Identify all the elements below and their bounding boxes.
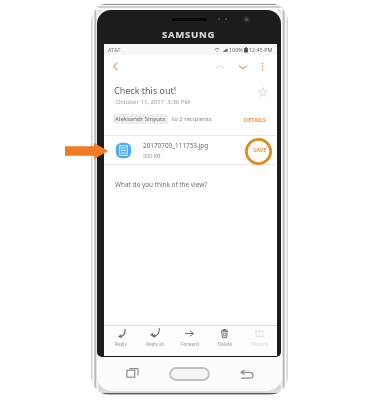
button[interactable]: Reply all [138, 326, 172, 349]
button[interactable]: Back [108, 59, 123, 74]
button[interactable]: Next message [235, 59, 250, 74]
button[interactable]: Star [256, 85, 269, 98]
button[interactable]: Reply [104, 326, 138, 349]
button[interactable]: 20170709_111753.jpg [104, 136, 277, 164]
staticText: Reply all [146, 341, 164, 347]
staticText: October 11, 2017 3:36 PM [116, 98, 190, 106]
button[interactable]: Discard [242, 326, 277, 349]
staticText: SAVE [253, 146, 267, 154]
staticText: to 2 recipients [172, 115, 212, 123]
staticText: Check this out! [114, 84, 177, 96]
button[interactable]: Back [239, 367, 255, 383]
staticText: 12:45 PM [249, 46, 273, 53]
staticText: AT&T [108, 46, 121, 53]
staticText: Delete [218, 341, 232, 347]
staticText: What do you think of the view? [115, 180, 208, 189]
button[interactable]: Recent apps [126, 366, 140, 380]
staticText: 100% [229, 46, 243, 53]
button[interactable]: More options [255, 59, 270, 74]
button[interactable]: Delete [207, 326, 242, 349]
button[interactable]: Previous message [212, 59, 227, 74]
staticText: Reply [115, 341, 127, 347]
button[interactable]: Home [169, 367, 210, 381]
staticText: DETAILS [244, 116, 267, 123]
staticText: Discard [251, 341, 268, 347]
button[interactable]: DETAILS [243, 115, 268, 124]
button[interactable]: SAVE [247, 141, 273, 159]
staticText: Forward [181, 341, 199, 347]
staticText: Aleksandr Sinyuts [115, 115, 166, 123]
staticText: SAMSUNG [162, 28, 216, 41]
staticText: 500 KB [143, 152, 161, 159]
staticText: 20170709_111753.jpg [143, 141, 209, 150]
button[interactable]: Forward [172, 326, 207, 349]
